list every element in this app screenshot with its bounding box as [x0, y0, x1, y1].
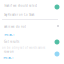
- staticText: Track if we should select: [4, 4, 37, 7]
- staticText: Say Reader on Co Stack: [4, 13, 34, 16]
- button[interactable]: Status: [54, 4, 59, 9]
- staticText: on be a tiny set of words across: [2, 46, 45, 49]
- staticText: row on: [4, 50, 14, 53]
- staticText: Get results: [4, 40, 19, 43]
- staticText: THE SECT: [4, 33, 14, 36]
- staticText: THE SECT: [3, 56, 13, 59]
- staticText: ask is we do not: [4, 25, 26, 28]
- button[interactable]: Status: [54, 39, 59, 44]
- button[interactable]: Info: [54, 51, 59, 56]
